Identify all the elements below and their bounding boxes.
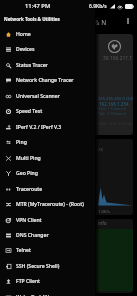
staticText: Network Change Tracer	[16, 77, 74, 84]
staticText: fe80::1a2b:3c4d:5e	[98, 121, 133, 126]
staticText: Speed Test	[16, 108, 43, 115]
staticText: Network Tools & Utilities	[4, 16, 60, 22]
button[interactable]: FTP Client	[0, 274, 95, 289]
button[interactable]: Universal Scanner	[0, 89, 95, 104]
staticText: 2K	[98, 147, 103, 153]
staticText: 6.9Kb/s	[89, 3, 107, 10]
staticText: 1.0K/s	[98, 209, 111, 215]
staticText: Home	[16, 31, 31, 38]
staticText: SSH (Secure Shell)	[16, 263, 60, 270]
staticText: Status Tracer	[16, 62, 48, 69]
button[interactable]: IPerf V.2 / IPerf V.3	[0, 120, 95, 135]
staticText: 255.255.255.0 (24)	[98, 96, 133, 102]
staticText: Universal Scanner	[16, 93, 60, 100]
button[interactable]: More options	[123, 14, 132, 27]
button[interactable]: Traceroute	[0, 182, 95, 197]
staticText: MTR (MyTraceroute) - (Root)	[16, 201, 84, 208]
button[interactable]: DNS Changer	[0, 228, 95, 243]
button[interactable]: Multi Ping	[0, 151, 95, 166]
staticText: 11:47 PM	[25, 2, 51, 10]
staticText: 192.168.1.254	[99, 101, 129, 107]
staticText: Wake On LAN	[16, 294, 50, 296]
staticText: 39.106.211.111	[103, 55, 133, 62]
staticText: Geo Ping	[16, 170, 38, 177]
staticText: VPN Client	[16, 217, 42, 224]
button[interactable]: 39.106.211.111	[4, 34, 133, 135]
button[interactable]: Speed Test	[0, 104, 95, 119]
staticText: Network Tools & Utilities & N	[18, 18, 107, 27]
button[interactable]: Wake On LAN	[0, 290, 95, 296]
button[interactable]: Devices	[0, 42, 95, 57]
staticText: DNS Changer	[16, 232, 49, 239]
staticText: info	[98, 220, 107, 227]
staticText: Tx0 : 1 Channel	[98, 111, 126, 116]
staticText: Ping	[16, 139, 27, 146]
staticText: Multi Ping	[16, 155, 41, 162]
button[interactable]: Network Change Tracer	[0, 73, 95, 88]
button[interactable]: 2K	[4, 139, 133, 215]
button[interactable]: Geo Ping	[0, 166, 95, 181]
button[interactable]: SSH (Secure Shell)	[0, 259, 95, 274]
button[interactable]: Status Tracer	[0, 58, 95, 73]
staticText: FTP Client	[16, 278, 41, 285]
staticText: IPerf V.2 / IPerf V.3	[16, 124, 62, 131]
staticText: Telnet	[16, 247, 31, 254]
button[interactable]: Ping	[0, 135, 95, 150]
button[interactable]: MTR (MyTraceroute) - (Root)	[0, 197, 95, 212]
staticText: Rx0 : 1 Channel	[98, 106, 127, 111]
staticText: Devices	[16, 46, 35, 53]
staticText: Traceroute	[16, 186, 43, 193]
button[interactable]: info	[4, 219, 133, 293]
button[interactable]: Home	[0, 27, 95, 42]
button[interactable]: VPN Client	[0, 213, 95, 228]
button[interactable]: Telnet	[0, 243, 95, 258]
